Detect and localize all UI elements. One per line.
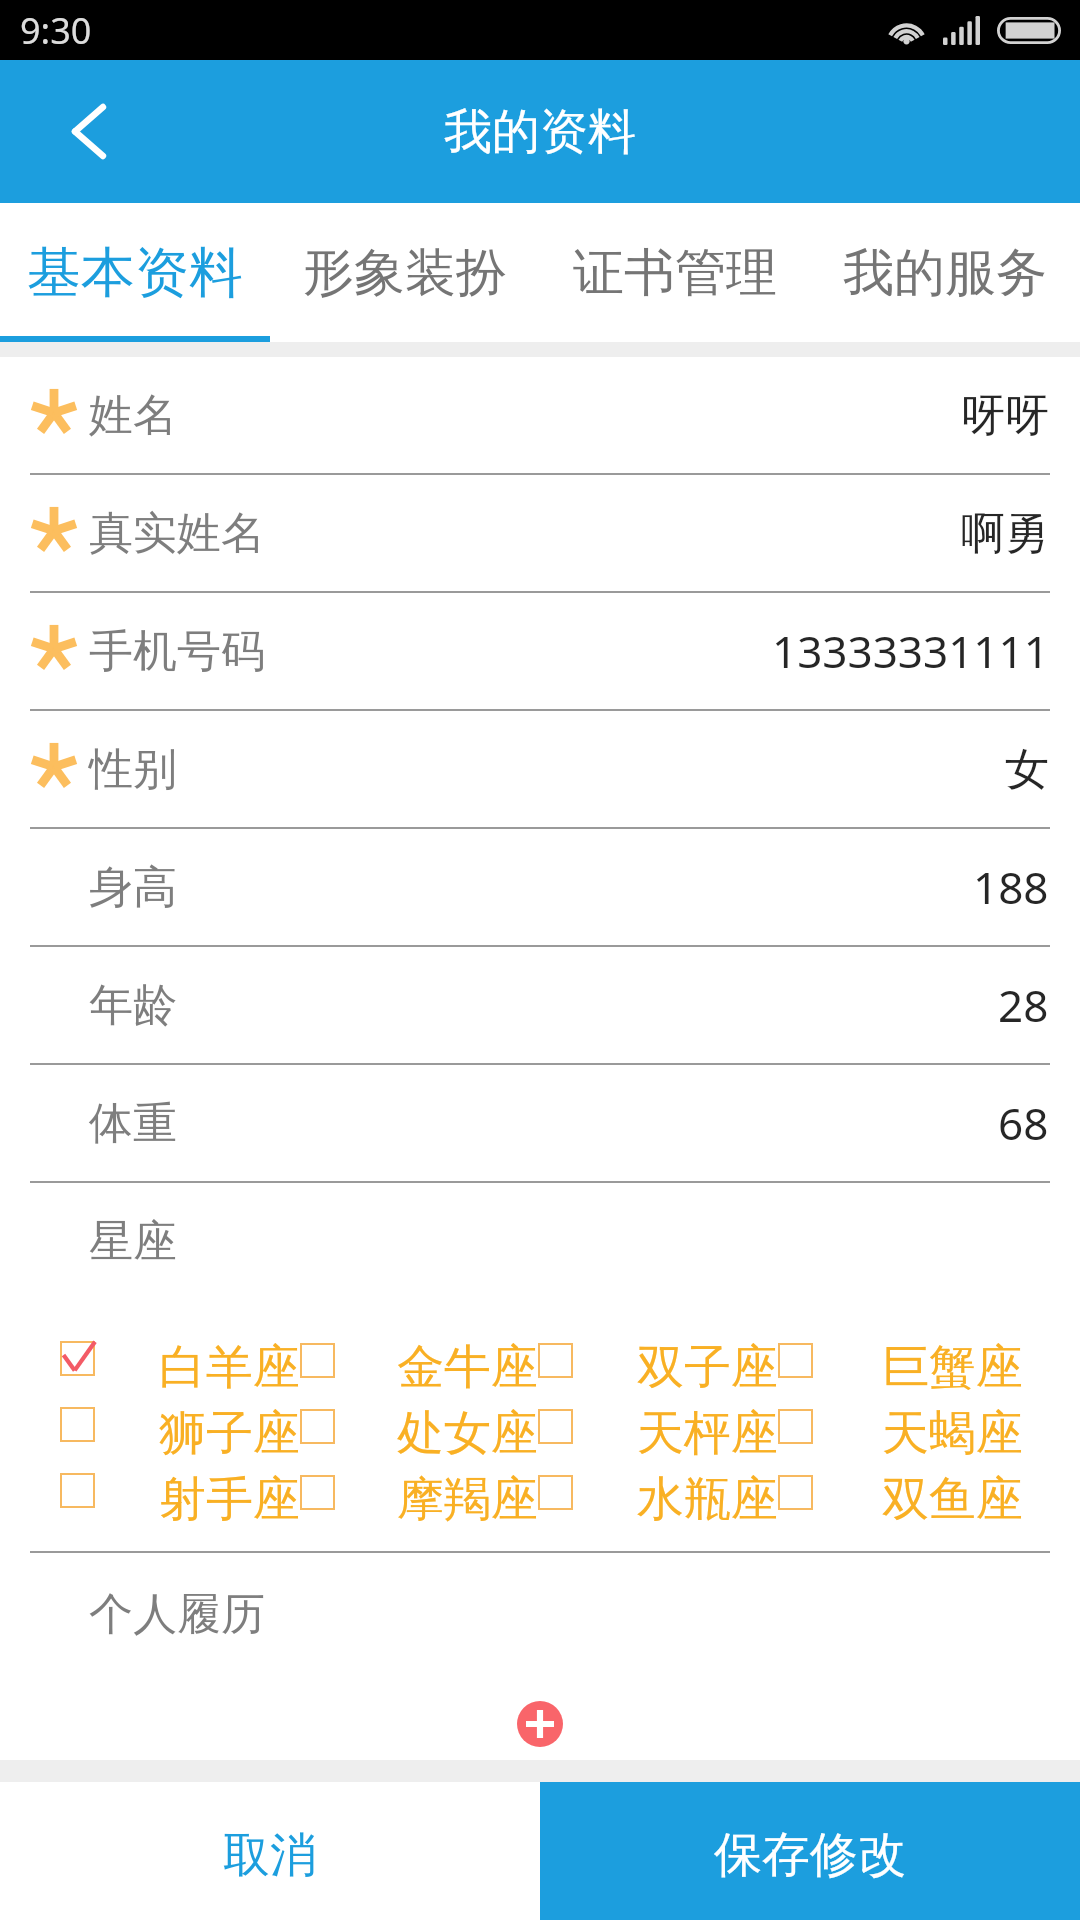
staticText: 年龄: [89, 978, 177, 1033]
button[interactable]: Add: [517, 1701, 563, 1747]
staticText: 天枰座: [637, 1404, 778, 1456]
button[interactable]: 基本资料: [0, 203, 270, 342]
button[interactable]: 白羊座: [60, 1341, 95, 1376]
button[interactable]: 水瓶座: [538, 1475, 573, 1510]
staticText: 取消: [223, 1826, 317, 1885]
staticText: 双子座: [637, 1338, 778, 1390]
button[interactable]: 姓名: [0, 357, 1080, 473]
staticText: 水瓶座: [637, 1470, 778, 1522]
staticText: 双鱼座: [882, 1470, 1023, 1522]
button[interactable]: 真实姓名: [0, 475, 1080, 591]
button[interactable]: 形象装扮: [270, 203, 540, 342]
button[interactable]: 处女座: [300, 1409, 335, 1444]
staticText: 姓名: [89, 388, 177, 443]
staticText: 身高: [89, 860, 177, 915]
button[interactable]: 金牛座: [397, 1338, 538, 1390]
button[interactable]: 取消: [0, 1782, 540, 1920]
staticText: 星座: [89, 1214, 177, 1269]
staticText: 13333331111: [772, 621, 1049, 681]
button[interactable]: 射手座: [159, 1470, 300, 1522]
button[interactable]: 天蝎座: [882, 1404, 1023, 1456]
button[interactable]: 射手座: [60, 1473, 95, 1508]
button[interactable]: Back: [0, 60, 178, 203]
button[interactable]: 体重: [0, 1065, 1080, 1181]
staticText: 体重: [89, 1096, 177, 1151]
staticText: 188: [973, 857, 1049, 917]
button[interactable]: 年龄: [0, 947, 1080, 1063]
staticText: 28: [998, 975, 1049, 1035]
staticText: 射手座: [159, 1470, 300, 1522]
staticText: 女: [1005, 742, 1049, 797]
button[interactable]: 身高: [0, 829, 1080, 945]
staticText: 白羊座: [159, 1338, 300, 1390]
staticText: 巨蟹座: [882, 1338, 1023, 1390]
button[interactable]: 双鱼座: [882, 1470, 1023, 1522]
staticText: 基本资料: [27, 239, 243, 307]
button[interactable]: 证书管理: [540, 203, 810, 342]
staticText: 我的资料: [444, 102, 636, 162]
staticText: 呀呀: [961, 388, 1049, 443]
button[interactable]: 白羊座: [159, 1338, 300, 1390]
staticText: 手机号码: [89, 624, 265, 679]
staticText: 68: [998, 1093, 1049, 1153]
button[interactable]: 天枰座: [538, 1409, 573, 1444]
button[interactable]: 双子座: [637, 1338, 778, 1390]
button[interactable]: 天枰座: [637, 1404, 778, 1456]
staticText: 啊勇: [961, 506, 1049, 561]
button[interactable]: 巨蟹座: [882, 1338, 1023, 1390]
button[interactable]: 摩羯座: [397, 1470, 538, 1522]
staticText: 处女座: [397, 1404, 538, 1456]
button[interactable]: 巨蟹座: [778, 1343, 813, 1378]
staticText: 性别: [89, 742, 177, 797]
button[interactable]: 我的服务: [810, 203, 1080, 342]
button[interactable]: 摩羯座: [300, 1475, 335, 1510]
button[interactable]: 双鱼座: [778, 1475, 813, 1510]
staticText: 个人履历: [89, 1587, 265, 1642]
staticText: 摩羯座: [397, 1470, 538, 1522]
staticText: 真实姓名: [89, 506, 265, 561]
staticText: 我的服务: [843, 241, 1047, 305]
button[interactable]: 天蝎座: [778, 1409, 813, 1444]
button[interactable]: 金牛座: [300, 1343, 335, 1378]
staticText: 狮子座: [159, 1404, 300, 1456]
button[interactable]: 性别: [0, 711, 1080, 827]
button[interactable]: 处女座: [397, 1404, 538, 1456]
button[interactable]: 保存修改: [540, 1782, 1080, 1920]
button[interactable]: 手机号码: [0, 593, 1080, 709]
button[interactable]: 狮子座: [60, 1407, 95, 1442]
button[interactable]: 狮子座: [159, 1404, 300, 1456]
button[interactable]: 双子座: [538, 1343, 573, 1378]
staticText: 金牛座: [397, 1338, 538, 1390]
staticText: 证书管理: [573, 241, 777, 305]
staticText: 保存修改: [714, 1825, 906, 1885]
staticText: 9:30: [20, 6, 92, 55]
button[interactable]: 水瓶座: [637, 1470, 778, 1522]
staticText: 天蝎座: [882, 1404, 1023, 1456]
staticText: 形象装扮: [303, 241, 507, 305]
button[interactable]: 星座: [0, 1183, 1080, 1299]
